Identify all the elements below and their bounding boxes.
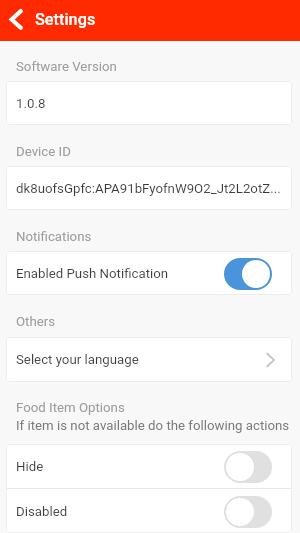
staticText: Enabled Push Notification — [16, 266, 169, 282]
staticText: Food Item Options — [16, 400, 125, 416]
button[interactable]: Switch off — [224, 496, 272, 528]
button[interactable]: Switch off — [224, 451, 272, 483]
staticText: Notifications — [16, 229, 92, 245]
staticText: Device ID — [16, 144, 71, 160]
staticText: Settings — [35, 10, 96, 29]
staticText: Hide — [16, 459, 44, 475]
staticText: Software Version — [16, 59, 117, 75]
button[interactable]: Back — [0, 0, 33, 41]
button[interactable] — [6, 251, 292, 295]
staticText: Disabled — [16, 504, 68, 520]
staticText: dk8uofsGpfc:APA91bFyofnW9O2_Jt2L2otZ... — [16, 181, 281, 197]
staticText: 1.0.8 — [16, 96, 46, 112]
button[interactable]: Select your language — [6, 337, 292, 382]
staticText: Select your language — [16, 352, 139, 368]
button[interactable]: Switch on — [224, 258, 272, 290]
staticText: Others — [16, 314, 56, 330]
staticText: If item is not available do the followin… — [16, 418, 290, 434]
